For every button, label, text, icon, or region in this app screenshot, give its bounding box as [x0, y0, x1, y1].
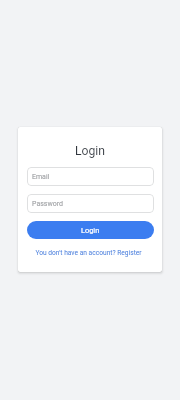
staticText: Password: [32, 200, 63, 208]
staticText: You don't have an account? Register: [35, 249, 142, 257]
staticText: Login: [75, 144, 106, 158]
staticText: Email: [32, 173, 50, 181]
button[interactable]: You don't have an account? Register: [18, 247, 160, 259]
button[interactable]: Password: [32, 194, 149, 213]
button[interactable]: Email: [32, 167, 149, 186]
staticText: Login: [81, 226, 100, 235]
button[interactable]: Login: [27, 221, 154, 239]
